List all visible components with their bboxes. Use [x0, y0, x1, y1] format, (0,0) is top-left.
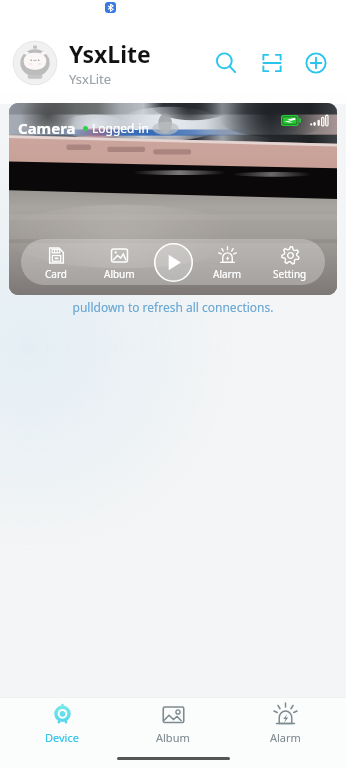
button[interactable]: Add device — [300, 47, 332, 79]
staticText: Album — [156, 730, 190, 745]
button[interactable]: Alarm — [198, 240, 256, 285]
button[interactable]: Setting — [261, 240, 319, 285]
staticText: Alarm — [270, 730, 301, 745]
staticText: Album — [104, 267, 135, 281]
button[interactable]: Profile — [11, 39, 59, 87]
staticText: YsxLite — [69, 70, 112, 88]
button[interactable]: Search — [210, 47, 242, 79]
button[interactable]: Device — [12, 702, 112, 745]
button[interactable]: Album — [90, 240, 148, 285]
button[interactable]: Camera — [9, 103, 337, 295]
staticText: Card — [45, 267, 68, 281]
staticText: Setting — [273, 267, 307, 281]
staticText: Camera — [18, 118, 76, 138]
staticText: Alarm — [213, 267, 242, 281]
button[interactable]: Play — [154, 243, 193, 282]
button[interactable]: Card — [27, 240, 85, 285]
staticText: pulldown to refresh all connections. — [0, 299, 346, 315]
button[interactable]: Scan QR code — [256, 47, 288, 79]
staticText: YsxLite — [69, 38, 151, 69]
button[interactable]: Album — [123, 702, 223, 745]
staticText: Device — [45, 730, 79, 745]
staticText: Logged-in — [92, 120, 149, 136]
button[interactable]: Alarm — [235, 702, 335, 745]
